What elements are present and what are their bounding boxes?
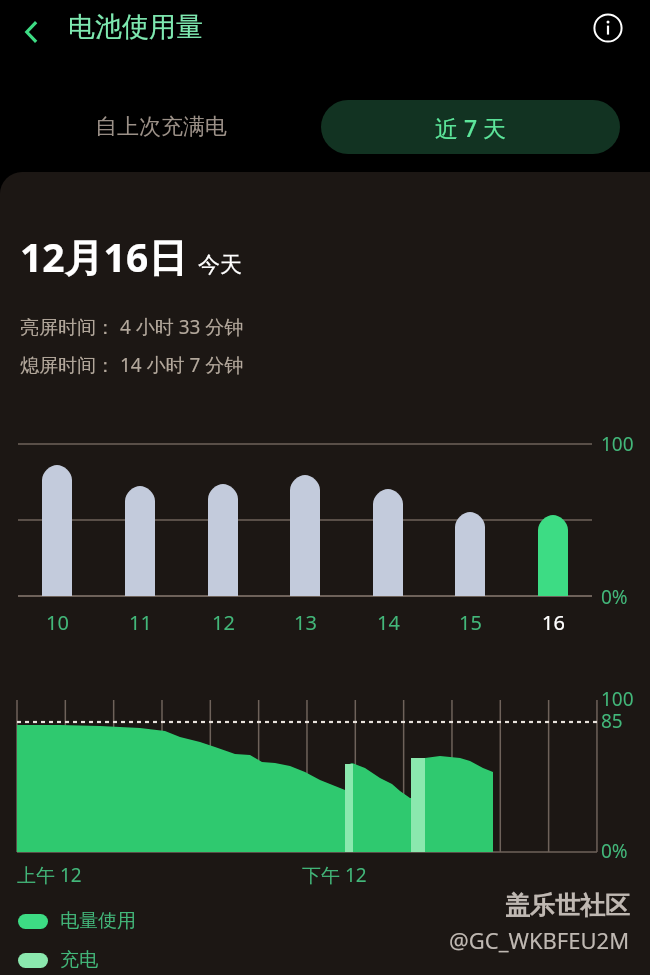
staticText: 10	[46, 609, 69, 636]
button[interactable]: Information	[584, 4, 632, 52]
button[interactable]: Back	[8, 8, 56, 56]
staticText: 85	[601, 708, 623, 734]
staticText: 熄屏时间： 14 小时 7 分钟	[20, 352, 244, 378]
staticText: 12月16日	[20, 230, 188, 283]
staticText: 亮屏时间： 4 小时 33 分钟	[20, 314, 244, 340]
staticText: 14	[377, 609, 400, 636]
button[interactable]: 自上次充满电	[0, 100, 321, 154]
staticText: 充电	[60, 948, 98, 972]
staticText: 今天	[198, 251, 242, 279]
staticText: 100	[601, 431, 634, 457]
staticText: 13	[294, 609, 317, 636]
button[interactable]: 电量使用	[18, 909, 136, 933]
staticText: 电池使用量	[68, 10, 203, 44]
staticText: 自上次充满电	[95, 113, 227, 141]
staticText: 12	[212, 609, 235, 636]
staticText: 11	[129, 609, 152, 636]
staticText: 电量使用	[60, 909, 136, 933]
button[interactable]: 充电	[18, 948, 98, 972]
staticText: 盖乐世社区	[505, 890, 630, 921]
staticText: @GC_WKBFEU2M	[449, 925, 630, 955]
button[interactable]: 近 7 天	[321, 100, 620, 154]
staticText: 下午 12	[302, 862, 367, 888]
staticText: 0%	[601, 584, 628, 610]
staticText: 100	[601, 686, 634, 712]
staticText: 16	[542, 609, 565, 636]
staticText: 15	[459, 609, 482, 636]
staticText: 0%	[601, 838, 628, 864]
staticText: 上午 12	[17, 862, 82, 888]
staticText: 近 7 天	[435, 112, 507, 143]
